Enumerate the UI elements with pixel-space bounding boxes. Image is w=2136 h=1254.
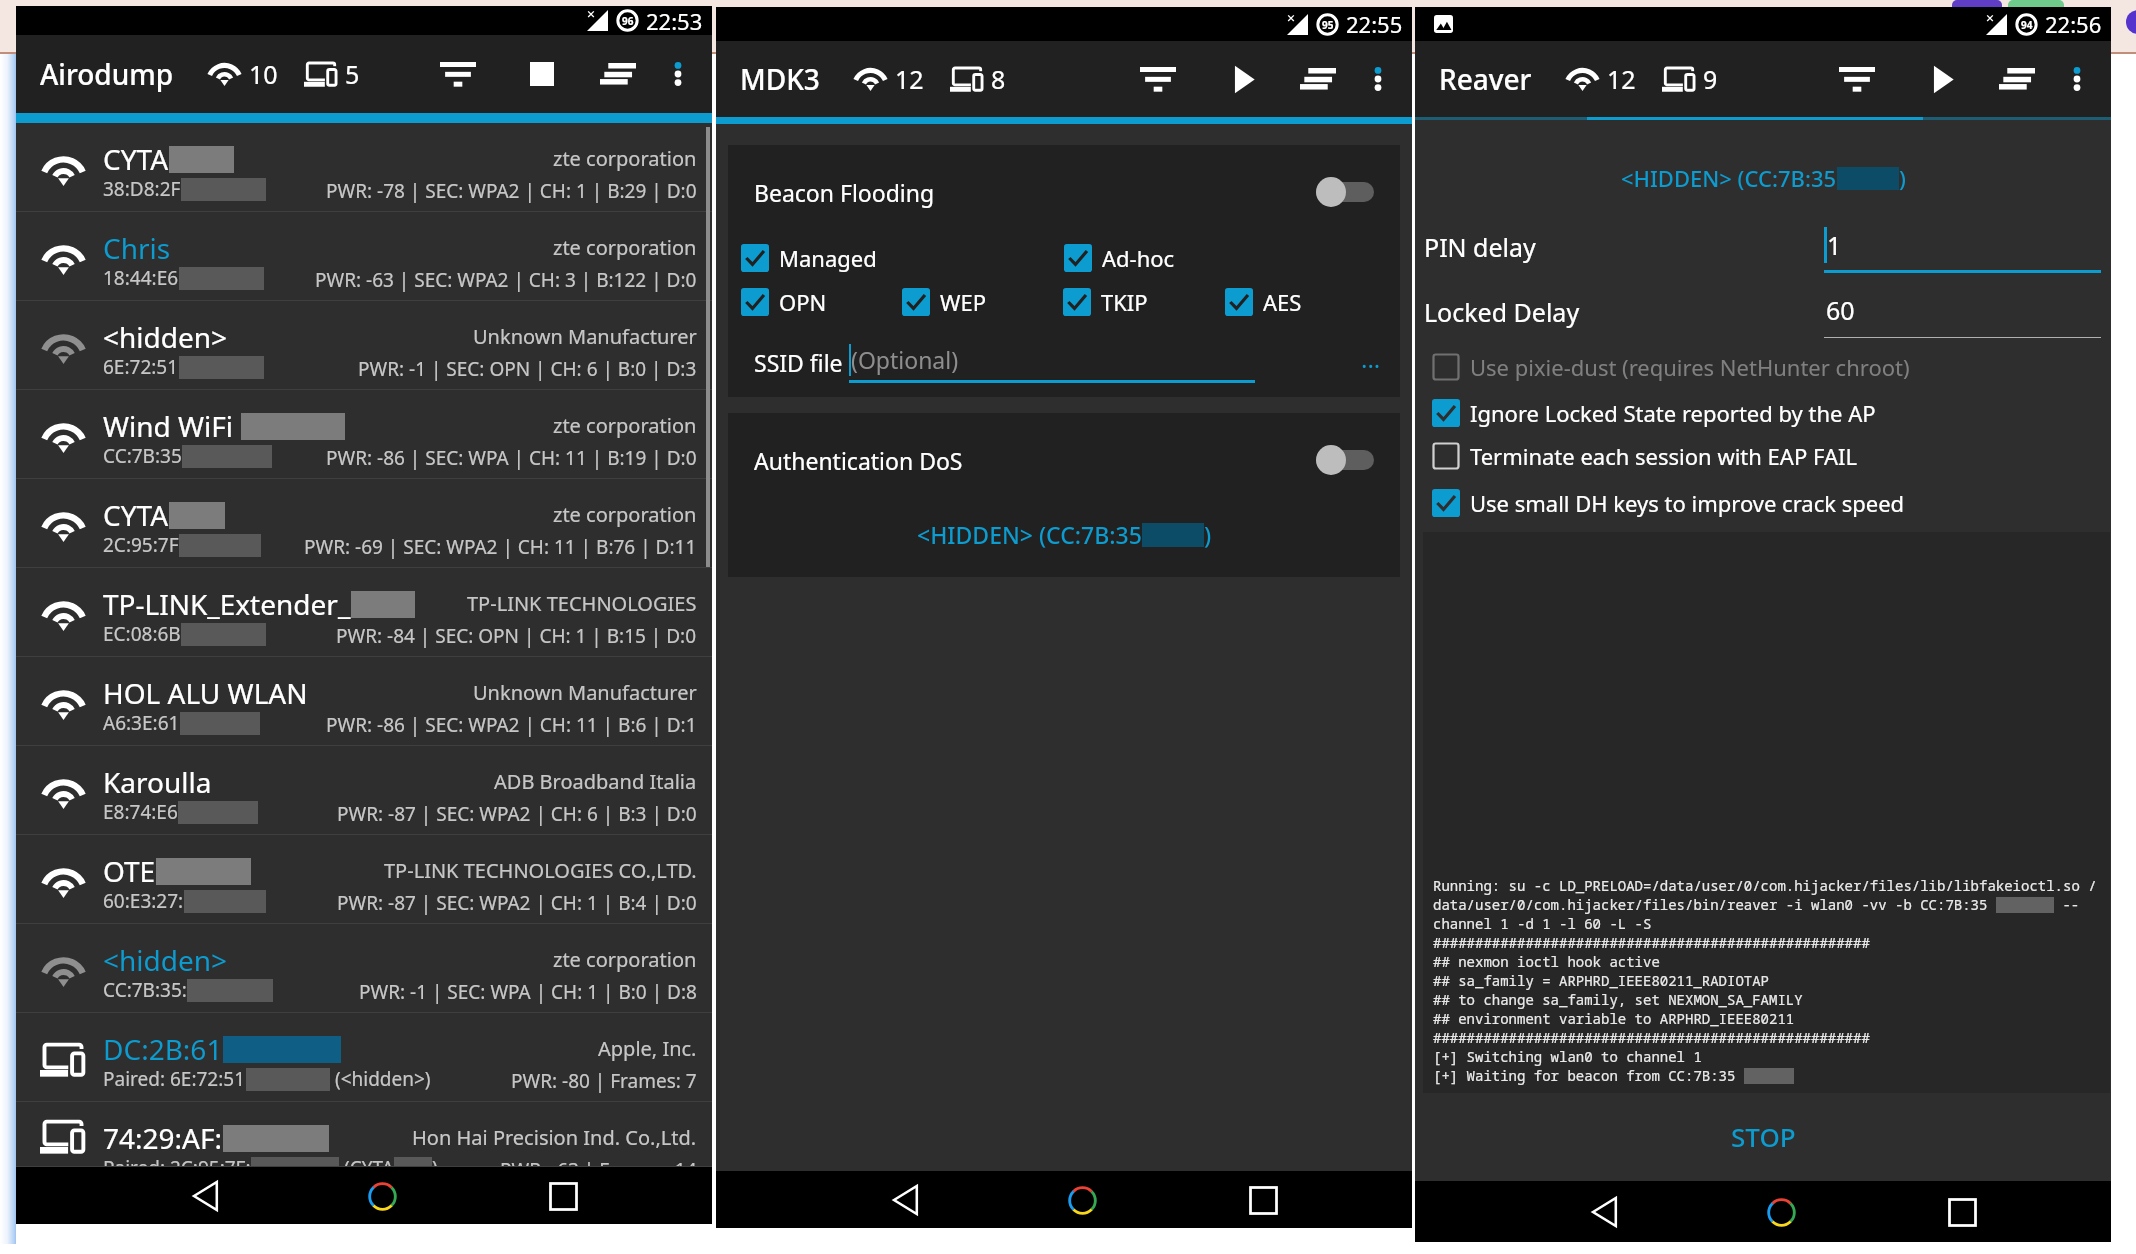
staticText: 18:44:E6 (103, 265, 179, 291)
button[interactable]: <HIDDEN> (CC:7B:35 (1415, 160, 2111, 196)
button[interactable]: HOL ALU WLAN (16, 657, 712, 746)
staticText: Running: su -c LD_PRELOAD=/data/user/0/c… (1433, 876, 2097, 895)
staticText: 95 (1322, 18, 1334, 32)
staticText: CC:7B:35 (103, 443, 182, 469)
button[interactable]: Back (178, 1168, 234, 1224)
button[interactable]: CYTA (16, 479, 712, 568)
staticText: (<hidden>) (330, 1066, 431, 1092)
button[interactable]: Terminate each session with EAP FAIL (1432, 441, 1857, 471)
staticText: 22:56 (2045, 9, 2102, 39)
staticText: 8 (991, 62, 1006, 96)
button[interactable]: AES (1225, 287, 1387, 317)
staticText: CYTA (103, 140, 169, 178)
staticText: 74:29:AF: (103, 1119, 223, 1157)
button[interactable]: Karoulla (16, 746, 712, 835)
button[interactable]: Recents (1235, 1172, 1291, 1228)
button[interactable]: Beacon Flooding (754, 145, 1374, 239)
staticText: ) (1899, 163, 1906, 193)
staticText: Hon Hai Precision Ind. Co.,Ltd. (412, 1124, 697, 1151)
staticText: Paired: 6E:72:51 (103, 1066, 246, 1092)
button[interactable]: More options (1354, 55, 1402, 103)
button[interactable]: Log (1292, 53, 1344, 105)
button[interactable]: More options (654, 50, 702, 98)
button[interactable]: 74:29:AF: (16, 1102, 712, 1167)
staticText: PIN delay (1424, 230, 1536, 264)
staticText: Use small DH keys to improve crack speed (1470, 488, 1905, 518)
staticText: E8:74:E6 (103, 799, 178, 825)
button[interactable]: Toggle (1316, 445, 1374, 475)
button[interactable]: TP-LINK_Extender_ (16, 568, 712, 657)
button[interactable]: Log (1991, 53, 2043, 105)
button[interactable]: Ignore Locked State reported by the AP (1432, 398, 1876, 428)
button[interactable]: Use small DH keys to improve crack speed (1432, 488, 1905, 518)
staticText: Authentication DoS (754, 445, 963, 476)
staticText: 12 (1607, 62, 1636, 96)
button[interactable]: Chris (16, 212, 712, 301)
staticText: TP-LINK TECHNOLOGIES CO.,LTD. (384, 857, 697, 884)
staticText: TP-LINK_Extender_ (103, 585, 351, 623)
staticText: ########################################… (1433, 933, 1870, 952)
staticText: Use pixie-dust (requires NetHunter chroo… (1470, 352, 1910, 382)
button[interactable]: Log (592, 48, 644, 100)
button[interactable]: More options (2053, 55, 2101, 103)
button[interactable]: OTE (16, 835, 712, 924)
button[interactable]: Home (1753, 1184, 1809, 1240)
staticText: PWR: -86 | SEC: WPA | CH: 11 | B:19 | D:… (326, 445, 697, 471)
staticText: data/user/0/com.hijacker/files/bin/reave… (1433, 895, 1996, 914)
staticText: 38:D8:2F (103, 176, 181, 202)
button[interactable]: OPN (741, 287, 902, 317)
staticText: [+] Waiting for beacon from CC:7B:35 (1433, 1066, 1744, 1085)
staticText: Wind WiFi (103, 407, 241, 445)
button[interactable]: WEP (902, 287, 1063, 317)
staticText: 22:53 (646, 6, 703, 35)
staticText: CYTA (103, 496, 169, 534)
button[interactable]: CYTA (16, 123, 712, 212)
button[interactable]: Back (1577, 1184, 1633, 1240)
staticText: -- (2054, 895, 2080, 914)
staticText: Ad-hoc (1102, 243, 1175, 273)
button[interactable]: <hidden> (16, 301, 712, 390)
button[interactable]: Stop (516, 48, 568, 100)
button[interactable]: Home (1054, 1172, 1110, 1228)
button[interactable]: Recents (1934, 1184, 1990, 1240)
button[interactable]: Authentication DoS (754, 413, 1374, 507)
staticText: PWR: -1 | SEC: WPA | CH: 1 | B:0 | D:8 (359, 979, 697, 1005)
button[interactable]: Home (354, 1168, 410, 1224)
staticText: PWR: -84 | SEC: OPN | CH: 1 | B:15 | D:0 (336, 623, 697, 649)
staticText: Paired: 2C:95:7F: (103, 1155, 251, 1181)
button[interactable]: Filter (432, 48, 484, 100)
button[interactable]: Use pixie-dust (requires NetHunter chroo… (1432, 352, 1910, 382)
staticText: PWR: -78 | SEC: WPA2 | CH: 1 | B:29 | D:… (326, 178, 697, 204)
staticText: 96 (622, 14, 634, 28)
button[interactable]: Toggle (1316, 177, 1374, 207)
button[interactable]: DC:2B:61 (16, 1013, 712, 1102)
staticText: CC:7B:35: (103, 977, 187, 1003)
button[interactable]: Filter (1831, 53, 1883, 105)
staticText: <HIDDEN> (CC:7B:35 (917, 519, 1142, 550)
button[interactable]: Recents (535, 1168, 591, 1224)
button[interactable]: Browse (1354, 341, 1388, 375)
button[interactable]: Filter (1132, 53, 1184, 105)
staticText: zte corporation (553, 145, 697, 172)
staticText: 1 (1827, 228, 1842, 262)
button[interactable]: STOP (1415, 1093, 2111, 1179)
staticText: zte corporation (553, 234, 697, 261)
button[interactable]: Ad-hoc (1064, 243, 1387, 273)
staticText: DC:2B:61 (103, 1030, 223, 1068)
staticText: MDK3 (740, 60, 820, 98)
button[interactable]: TKIP (1063, 287, 1225, 317)
staticText: PWR: -1 | SEC: OPN | CH: 6 | B:0 | D:3 (358, 356, 697, 382)
button[interactable]: Wind WiFi (16, 390, 712, 479)
staticText: ## nexmon ioctl hook active (1433, 952, 1660, 971)
button[interactable]: Start (1216, 53, 1268, 105)
staticText: Terminate each session with EAP FAIL (1470, 441, 1857, 471)
button[interactable]: <hidden> (16, 924, 712, 1013)
staticText: zte corporation (553, 501, 697, 528)
staticText: WEP (940, 287, 987, 317)
button[interactable]: Managed (741, 243, 1064, 273)
staticText: 94 (2021, 18, 2033, 32)
staticText: PWR: -87 | SEC: WPA2 | CH: 1 | B:4 | D:0 (337, 890, 697, 916)
button[interactable]: Back (878, 1172, 934, 1228)
staticText: Managed (779, 243, 877, 273)
button[interactable]: Start (1915, 53, 1967, 105)
